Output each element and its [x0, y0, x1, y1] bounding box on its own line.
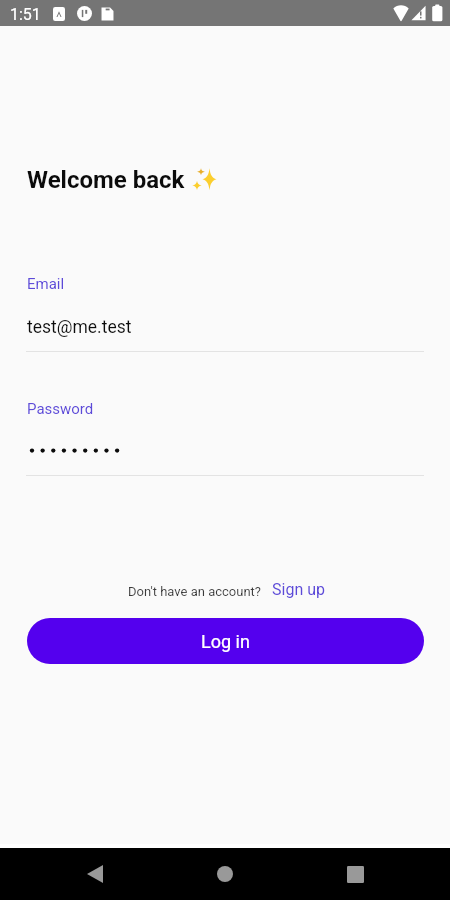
staticText: test@me.test — [27, 317, 132, 338]
button[interactable]: Recent apps — [305, 848, 405, 900]
staticText: Log in — [201, 631, 250, 652]
button[interactable]: Log in — [27, 618, 424, 664]
button[interactable]: Home — [175, 848, 275, 900]
button[interactable]: Back — [45, 848, 145, 900]
staticText: Password — [27, 400, 94, 418]
staticText: Welcome back — [27, 166, 185, 194]
staticText: Sign up — [272, 580, 325, 599]
staticText: Don't have an account? — [128, 584, 261, 599]
staticText: Email — [27, 275, 65, 293]
button[interactable]: Sign up — [272, 580, 325, 599]
staticText: 1:51 — [10, 5, 41, 24]
